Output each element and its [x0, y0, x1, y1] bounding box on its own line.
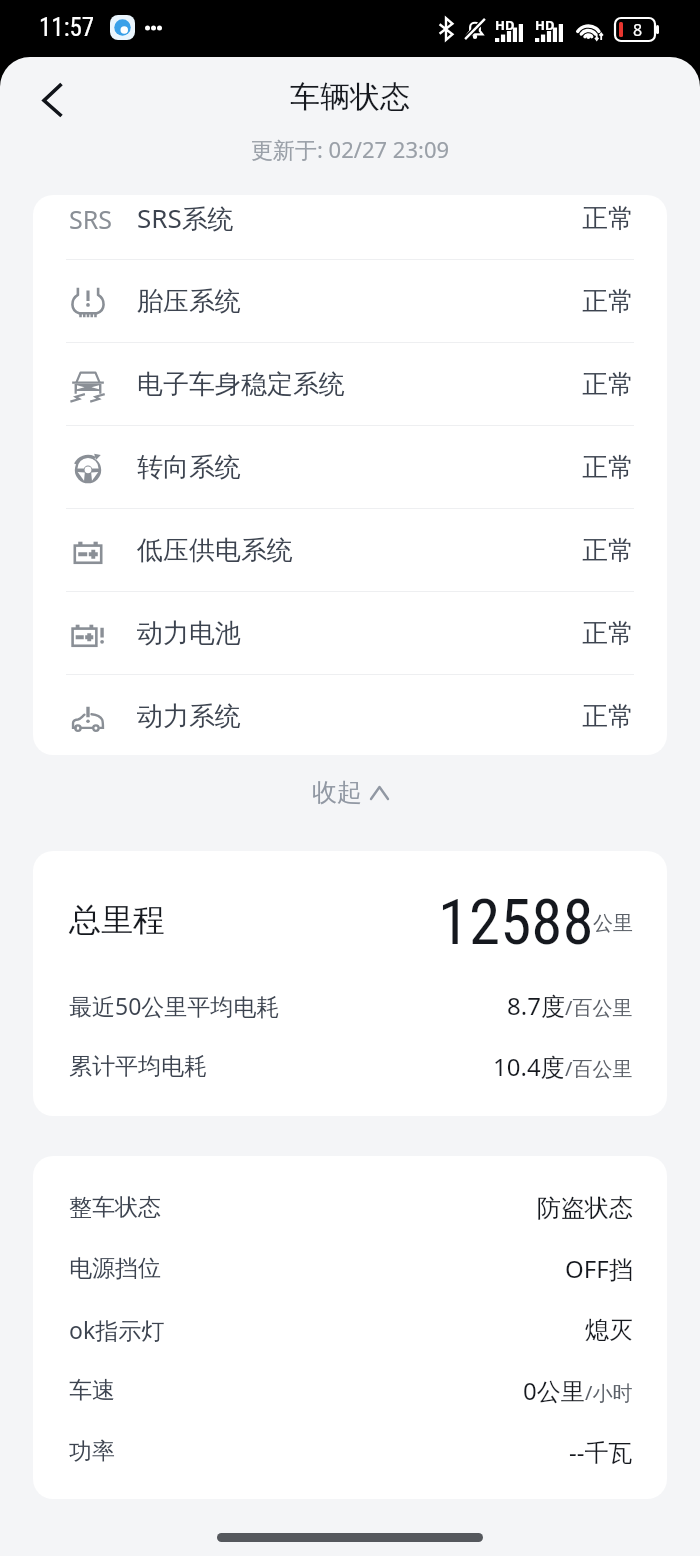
staticText: 8.7度 [507, 989, 565, 1022]
staticText: 11:57 [39, 13, 95, 42]
staticText: 总里程 [69, 900, 165, 940]
staticText: 胎压系统 [137, 285, 241, 318]
button[interactable]: 整车状态 [33, 1177, 667, 1238]
button[interactable]: 收起 [290, 765, 410, 820]
staticText: 8 [633, 19, 643, 41]
staticText: 车辆状态 [290, 78, 410, 116]
staticText: 0公里 [523, 1374, 585, 1407]
staticText: 整车状态 [69, 1193, 161, 1222]
staticText: 功率 [69, 1437, 115, 1466]
staticText: 动力电池 [137, 617, 241, 650]
staticText: 累计平均电耗 [69, 1052, 207, 1081]
staticText: 防盗状态 [537, 1193, 633, 1223]
staticText: 正常 [582, 700, 634, 733]
staticText: 车速 [69, 1376, 115, 1405]
staticText: 更新于: 02/27 23:09 [251, 134, 450, 164]
staticText: 10.4度 [493, 1050, 565, 1083]
staticText: --千瓦 [569, 1435, 633, 1468]
staticText: 正常 [582, 451, 634, 484]
staticText: 转向系统 [137, 451, 241, 484]
button[interactable]: 车速 [33, 1360, 667, 1421]
button[interactable]: ok指示灯 [33, 1299, 667, 1360]
button[interactable]: Back [24, 61, 80, 117]
staticText: ok指示灯 [69, 1314, 165, 1345]
staticText: 正常 [582, 202, 634, 235]
button[interactable]: 转向系统 [33, 426, 667, 508]
staticText: 正常 [582, 534, 634, 567]
button[interactable]: 电子车身稳定系统 [33, 343, 667, 425]
button[interactable]: 累计平均电耗 [33, 1036, 667, 1097]
button[interactable]: 动力系统 [33, 675, 667, 755]
staticText: /百公里 [565, 1055, 633, 1082]
staticText: 动力系统 [137, 700, 241, 733]
button[interactable]: 功率 [33, 1421, 667, 1482]
staticText: 收起 [312, 777, 362, 808]
button[interactable]: 动力电池 [33, 592, 667, 674]
staticText: SRS系统 [137, 200, 234, 236]
button[interactable]: 低压供电系统 [33, 509, 667, 591]
button[interactable]: 电源挡位 [33, 1238, 667, 1299]
staticText: 正常 [582, 617, 634, 650]
staticText: HD [535, 16, 555, 34]
staticText: 最近50公里平均电耗 [69, 990, 280, 1021]
staticText: 电子车身稳定系统 [137, 368, 345, 401]
staticText: /百公里 [565, 994, 633, 1021]
staticText: 低压供电系统 [137, 534, 293, 567]
button[interactable]: SRS [33, 195, 667, 259]
staticText: 公里 [593, 911, 633, 936]
staticText: HD [495, 16, 515, 34]
staticText: 电源挡位 [69, 1254, 161, 1283]
staticText: /小时 [585, 1379, 633, 1406]
button[interactable]: 最近50公里平均电耗 [33, 975, 667, 1036]
staticText: 熄灭 [585, 1315, 633, 1345]
staticText: SRS [69, 202, 113, 236]
button[interactable]: 胎压系统 [33, 260, 667, 342]
staticText: 正常 [582, 368, 634, 401]
staticText: 12588 [438, 886, 594, 960]
staticText: 正常 [582, 285, 634, 318]
staticText: OFF挡 [565, 1252, 633, 1285]
